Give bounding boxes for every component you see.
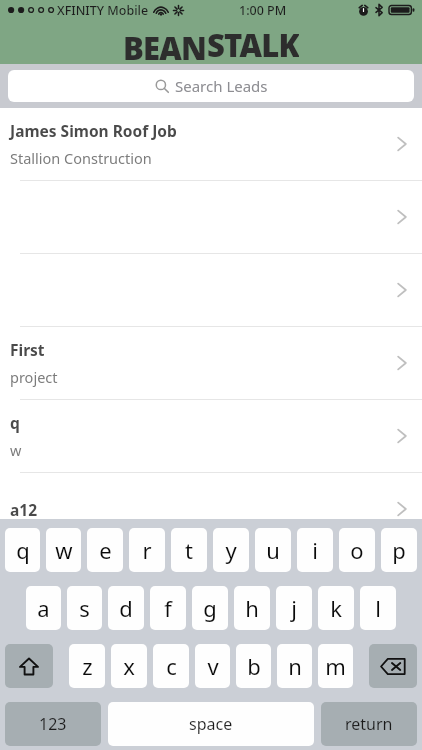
staticText: h (245, 593, 259, 623)
staticText: Search Leads (175, 76, 268, 96)
staticText: Stallion Construction (10, 148, 152, 168)
button[interactable]: x (111, 644, 147, 688)
staticText: y (225, 535, 237, 565)
staticText: x (123, 651, 135, 681)
button[interactable]: Backspace (369, 644, 417, 688)
button[interactable]: q (0, 400, 422, 472)
staticText: q (16, 535, 30, 565)
staticText: r (142, 535, 152, 565)
staticText: project (10, 367, 58, 387)
button[interactable]: g (192, 586, 228, 630)
button[interactable]: d (108, 586, 144, 630)
button[interactable]: w (46, 528, 81, 572)
button[interactable]: James Simon Roof Job (0, 108, 422, 180)
button[interactable]: n (277, 644, 312, 688)
staticText: n (288, 651, 302, 681)
staticText: First (10, 339, 45, 360)
staticText: v (207, 651, 219, 681)
button[interactable]: r (129, 528, 165, 572)
staticText: o (350, 535, 364, 565)
staticText: m (325, 651, 346, 681)
button[interactable]: f (150, 586, 186, 630)
button[interactable]: b (236, 644, 271, 688)
button[interactable]: space (108, 702, 314, 746)
button[interactable]: s (67, 586, 102, 630)
staticText: j (291, 593, 297, 623)
button[interactable]: l (360, 586, 396, 630)
button[interactable]: 123 (5, 702, 101, 746)
button[interactable]: First (0, 327, 422, 399)
staticText: g (203, 593, 217, 623)
staticText: s (79, 593, 90, 623)
staticText: u (266, 535, 280, 565)
staticText: return (345, 713, 393, 735)
button[interactable]: i (297, 528, 333, 572)
staticText: c (166, 651, 177, 681)
staticText: a (37, 593, 50, 623)
button[interactable]: Shift (5, 644, 53, 688)
staticText: w (55, 535, 73, 565)
button[interactable]: o (339, 528, 375, 572)
button[interactable]: Search Leads (8, 70, 414, 102)
button[interactable]: e (87, 528, 123, 572)
staticText: BEAN (123, 27, 207, 63)
staticText: James Simon Roof Job (10, 120, 177, 141)
button[interactable]: return (321, 702, 417, 746)
button[interactable]: h (234, 586, 270, 630)
staticText: d (119, 593, 133, 623)
staticText: e (99, 535, 112, 565)
button[interactable]: p (381, 528, 417, 572)
staticText: q (10, 412, 20, 433)
button[interactable]: z (69, 644, 105, 688)
staticText: XFINITY Mobile (57, 2, 149, 19)
button[interactable]: m (318, 644, 353, 688)
button[interactable]: k (318, 586, 354, 630)
staticText: l (375, 593, 381, 623)
staticText: k (330, 593, 342, 623)
button[interactable]: v (195, 644, 230, 688)
button[interactable]: c (153, 644, 189, 688)
staticText: t (185, 535, 193, 565)
staticText: b (247, 651, 261, 681)
button[interactable]: t (171, 528, 207, 572)
staticText: a12 (10, 499, 38, 520)
staticText: f (164, 593, 172, 623)
button[interactable]: u (255, 528, 291, 572)
staticText: 123 (39, 713, 67, 735)
staticText: space (189, 713, 233, 735)
staticText: i (312, 535, 318, 565)
staticText: 1:00 PM (239, 2, 287, 19)
button[interactable]: a12 (0, 473, 422, 545)
staticText: p (392, 535, 406, 565)
button[interactable]: q (5, 528, 40, 572)
button[interactable]: a (26, 586, 61, 630)
staticText: z (82, 651, 93, 681)
staticText: w (10, 440, 22, 460)
staticText: STALK (207, 24, 299, 60)
button[interactable]: j (276, 586, 312, 630)
button[interactable]: y (213, 528, 249, 572)
